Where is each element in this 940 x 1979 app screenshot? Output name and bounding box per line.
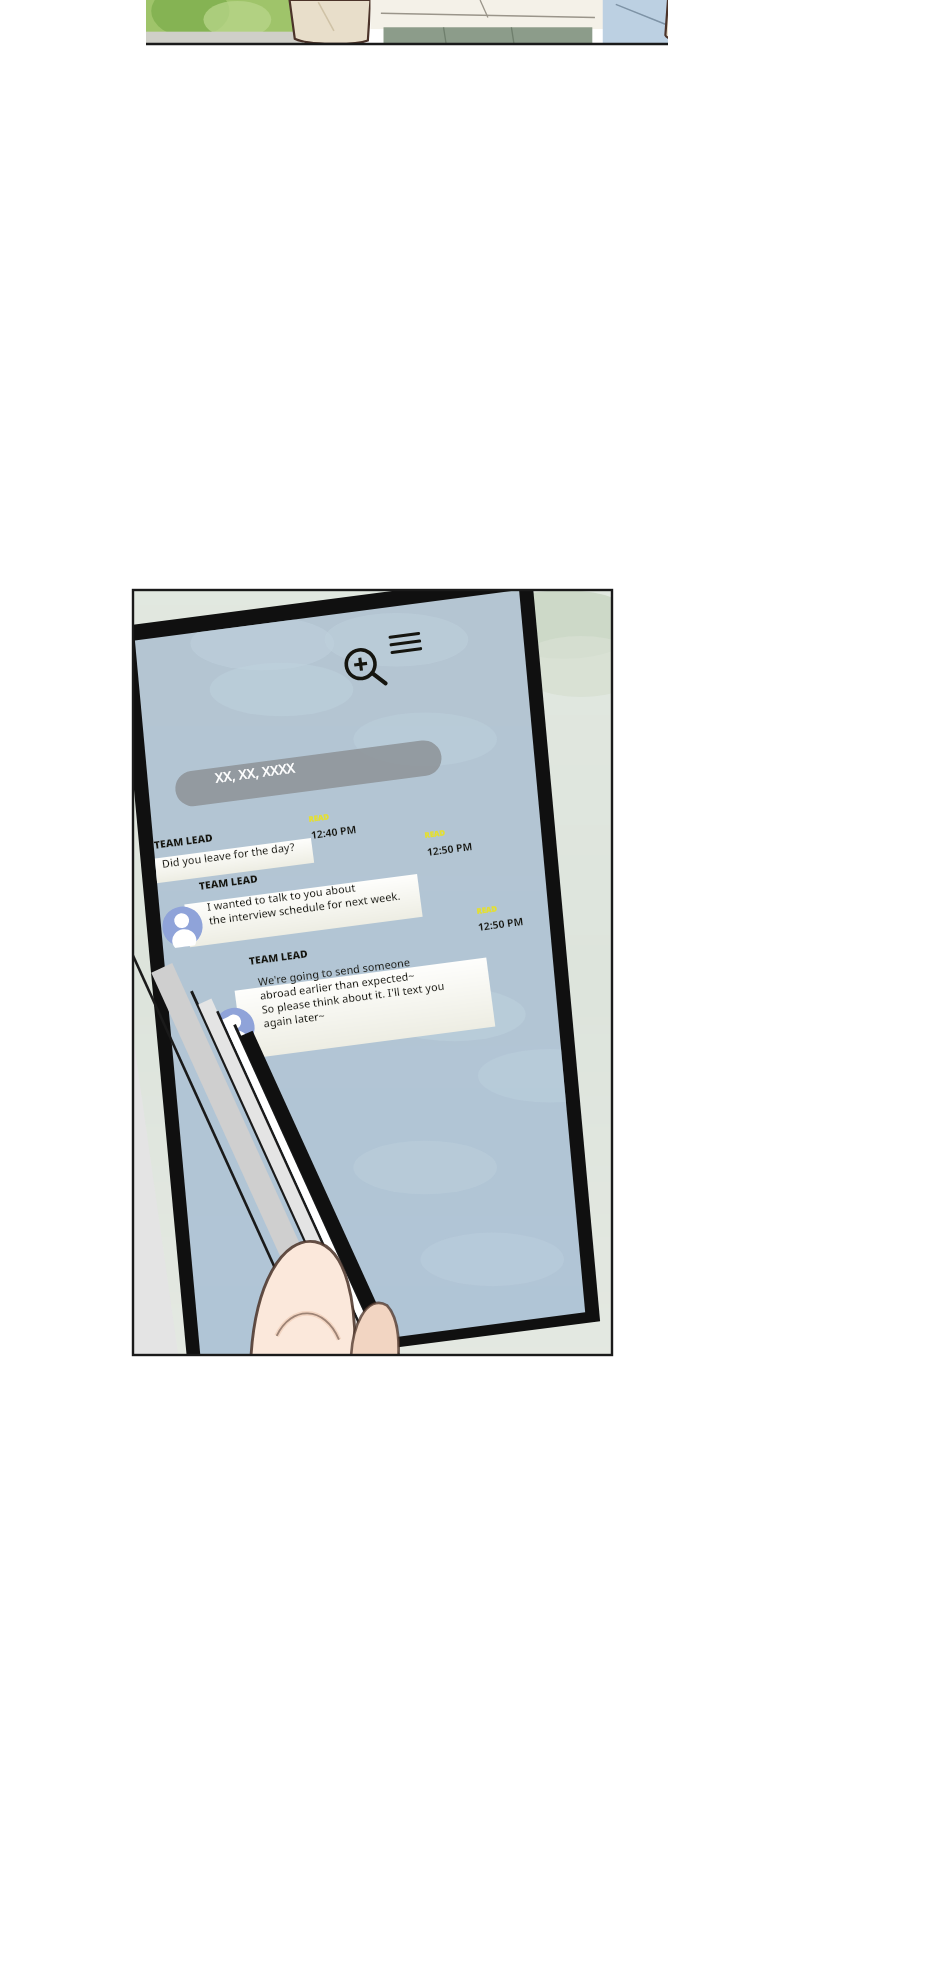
button[interactable]: We're going to send someone abroad earli… xyxy=(257,950,447,1030)
button[interactable]: XX, XX, XXXX xyxy=(214,758,297,787)
staticText: Did you leave for the day? xyxy=(161,838,296,871)
staticText: I wanted to talk to you about the interv… xyxy=(206,874,401,928)
staticText: We're going to send someone abroad earli… xyxy=(257,950,447,1030)
staticText: TEAM LEAD xyxy=(198,871,259,893)
staticText: READ xyxy=(476,903,498,916)
staticText: TEAM LEAD xyxy=(248,946,309,968)
button[interactable]: Menu xyxy=(392,627,428,663)
staticText: 12:40 PM xyxy=(310,822,357,842)
button[interactable]: Zoom in xyxy=(347,648,383,684)
staticText: 12:50 PM xyxy=(426,839,473,859)
button[interactable]: XX, XX, XXXX xyxy=(0,0,940,1979)
staticText: READ xyxy=(424,827,446,840)
button[interactable]: I wanted to talk to you about the interv… xyxy=(206,874,401,928)
staticText: XX, XX, XXXX xyxy=(214,758,297,787)
button[interactable]: Did you leave for the day? xyxy=(161,838,296,871)
staticText: READ xyxy=(308,811,330,824)
staticText: TEAM LEAD xyxy=(153,830,214,852)
staticText: 12:50 PM xyxy=(477,914,524,934)
